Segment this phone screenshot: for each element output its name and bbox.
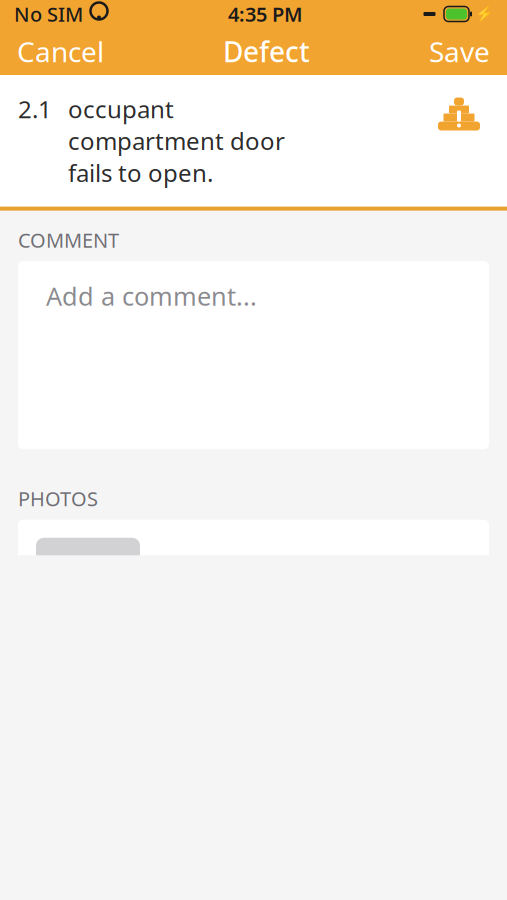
staticText: Cancel [17, 33, 104, 70]
button[interactable]: Add a comment... [18, 261, 489, 449]
staticText: COMMENT [18, 227, 119, 253]
staticText: Add a comment... [46, 279, 257, 313]
button[interactable]: Add photo [36, 538, 140, 611]
staticText: PHOTOS [18, 485, 98, 512]
staticText: No SIM [14, 1, 83, 27]
button[interactable]: Cancel [0, 28, 121, 75]
staticText: 4:35 PM [228, 1, 303, 27]
staticText: ⚡ [475, 6, 493, 22]
staticText: occupant compartment door fails to open. [68, 93, 285, 189]
staticText: Defect [223, 33, 310, 70]
staticText: Save [429, 33, 490, 70]
button[interactable]: Save [412, 28, 507, 75]
staticText: 2.1 [18, 93, 52, 125]
